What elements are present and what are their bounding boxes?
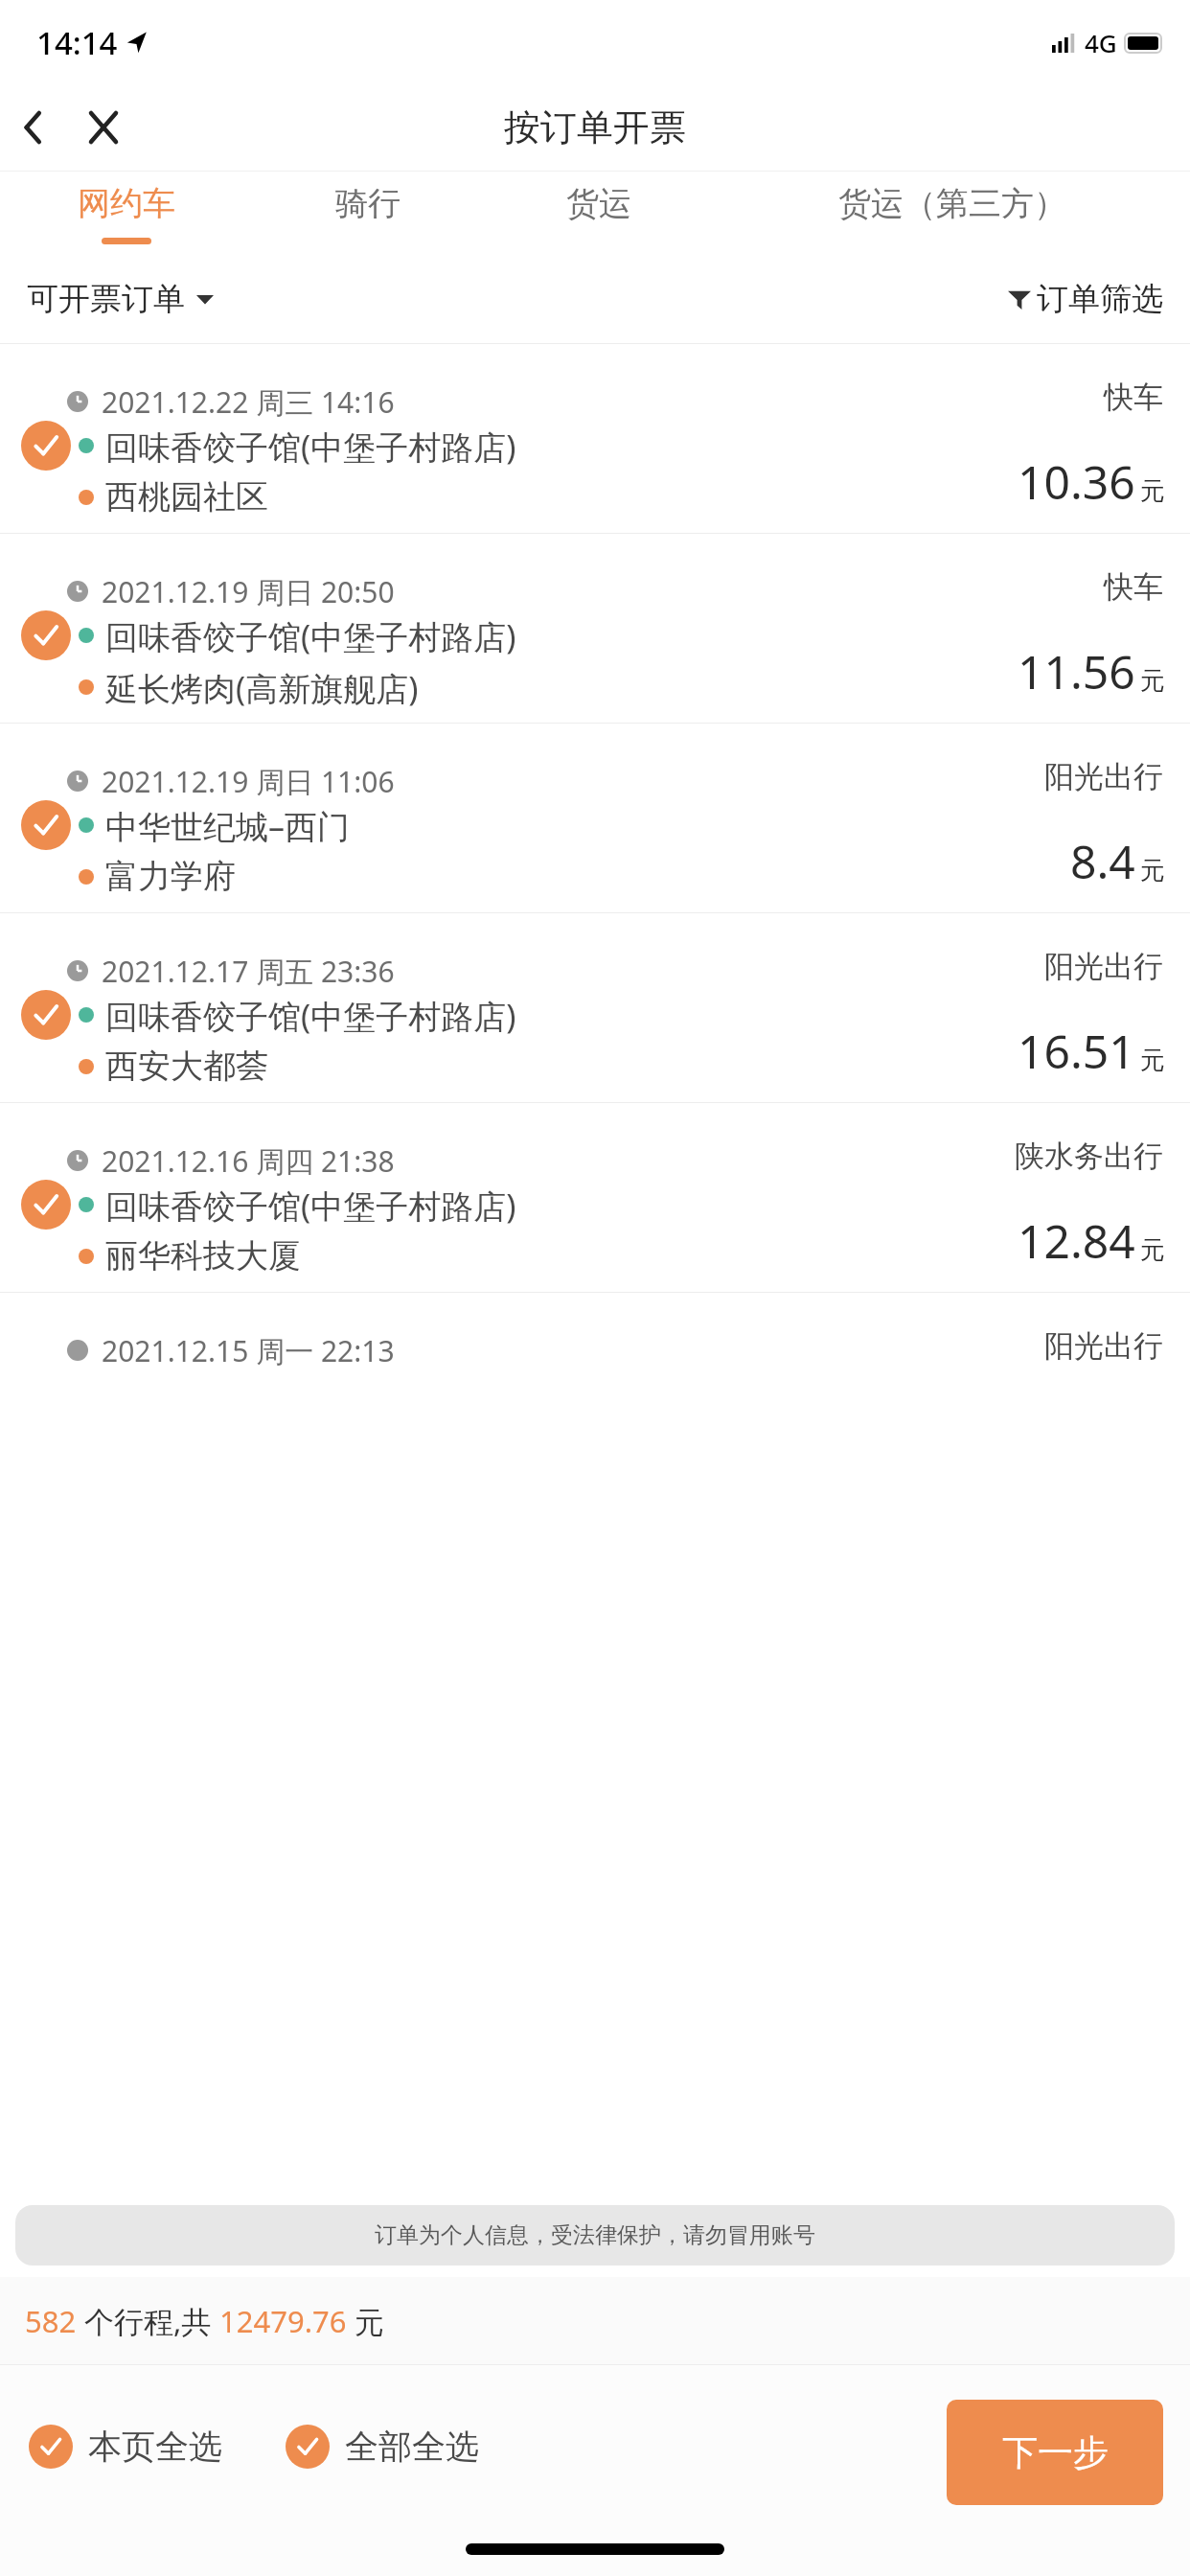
button[interactable]: Selected — [21, 990, 71, 1040]
staticText: 阳光出行 — [1044, 758, 1163, 795]
button[interactable]: 全部全选 — [286, 2425, 479, 2469]
staticText: 12479.76 — [219, 2301, 347, 2341]
button[interactable]: 2021.12.16 周四 21:38 — [0, 1103, 1190, 1293]
staticText: 可开票订单 — [27, 279, 185, 319]
staticText: 元 — [1140, 855, 1165, 886]
button[interactable]: 本页全选 — [29, 2425, 222, 2469]
button[interactable]: Selected — [21, 800, 71, 850]
button[interactable]: Selected — [21, 610, 71, 660]
staticText: 2021.12.15 周一 22:13 — [102, 1331, 395, 1370]
staticText: 全部全选 — [345, 2426, 479, 2468]
button[interactable]: 订单筛选 — [1008, 279, 1163, 319]
staticText: 下一步 — [1002, 2430, 1109, 2475]
staticText: 回味香饺子馆(中堡子村路店) — [105, 994, 516, 1038]
button[interactable]: 骑行 — [252, 172, 483, 254]
button[interactable]: Back — [0, 93, 69, 162]
staticText: 丽华科技大厦 — [105, 1235, 301, 1276]
button[interactable]: Close — [69, 93, 138, 162]
staticText: 快车 — [1104, 568, 1163, 606]
button[interactable]: 网约车 — [0, 172, 252, 254]
staticText: 4G — [1085, 26, 1117, 59]
button[interactable]: 货运（第三方） — [714, 172, 1190, 254]
staticText: 14:14 — [36, 21, 118, 64]
staticText: 骑行 — [335, 183, 400, 224]
button[interactable]: 2021.12.15 周一 22:13 — [0, 1293, 1190, 1483]
staticText: 元 — [1140, 1234, 1165, 1266]
staticText: 11.56 — [1018, 640, 1135, 702]
staticText: 2021.12.19 周日 20:50 — [102, 572, 395, 611]
staticText: 2021.12.19 周日 11:06 — [102, 762, 395, 801]
staticText: 元 — [347, 2301, 385, 2341]
staticText: 回味香饺子馆(中堡子村路店) — [105, 614, 516, 658]
button[interactable]: 2021.12.19 周日 11:06 — [0, 724, 1190, 913]
staticText: 10.36 — [1018, 450, 1135, 513]
staticText: 订单筛选 — [1037, 279, 1163, 319]
staticText: 个行程,共 — [77, 2301, 219, 2341]
staticText: 中华世纪城–西门 — [105, 804, 350, 848]
staticText: 西安大都荟 — [105, 1046, 268, 1087]
staticText: 8.4 — [1070, 830, 1135, 892]
staticText: 延长烤肉(高新旗舰店) — [105, 666, 419, 710]
staticText: 订单为个人信息，受法律保护，请勿冒用账号 — [375, 2221, 815, 2249]
staticText: 货运（第三方） — [838, 183, 1066, 224]
staticText: 元 — [1140, 665, 1165, 697]
staticText: 2021.12.17 周五 23:36 — [102, 952, 395, 991]
button[interactable]: Selected — [21, 1180, 71, 1230]
staticText: 16.51 — [1018, 1020, 1135, 1082]
staticText: 网约车 — [78, 183, 175, 224]
staticText: 本页全选 — [88, 2426, 222, 2468]
staticText: 阳光出行 — [1044, 1327, 1163, 1365]
staticText: 2021.12.16 周四 21:38 — [102, 1141, 395, 1181]
staticText: 回味香饺子馆(中堡子村路店) — [105, 425, 516, 469]
staticText: 元 — [1140, 1045, 1165, 1076]
button[interactable]: 2021.12.19 周日 20:50 — [0, 534, 1190, 724]
button[interactable]: 可开票订单 — [27, 279, 214, 319]
button[interactable]: 货运 — [483, 172, 714, 254]
staticText: 12.84 — [1018, 1209, 1135, 1272]
staticText: 货运 — [566, 183, 631, 224]
button[interactable]: 2021.12.17 周五 23:36 — [0, 913, 1190, 1103]
staticText: 回味香饺子馆(中堡子村路店) — [105, 1184, 516, 1228]
staticText: 元 — [1140, 475, 1165, 507]
button[interactable]: 下一步 — [947, 2400, 1163, 2505]
staticText: 2021.12.22 周三 14:16 — [102, 382, 395, 422]
staticText: 陕水务出行 — [1015, 1138, 1163, 1175]
staticText: 按订单开票 — [504, 104, 686, 150]
staticText: 阳光出行 — [1044, 948, 1163, 985]
staticText: 富力学府 — [105, 856, 236, 897]
button[interactable]: Selected — [21, 421, 71, 471]
staticText: 快车 — [1104, 379, 1163, 416]
staticText: 582 — [25, 2301, 77, 2341]
button[interactable]: 2021.12.22 周三 14:16 — [0, 344, 1190, 534]
staticText: 西桃园社区 — [105, 476, 268, 517]
